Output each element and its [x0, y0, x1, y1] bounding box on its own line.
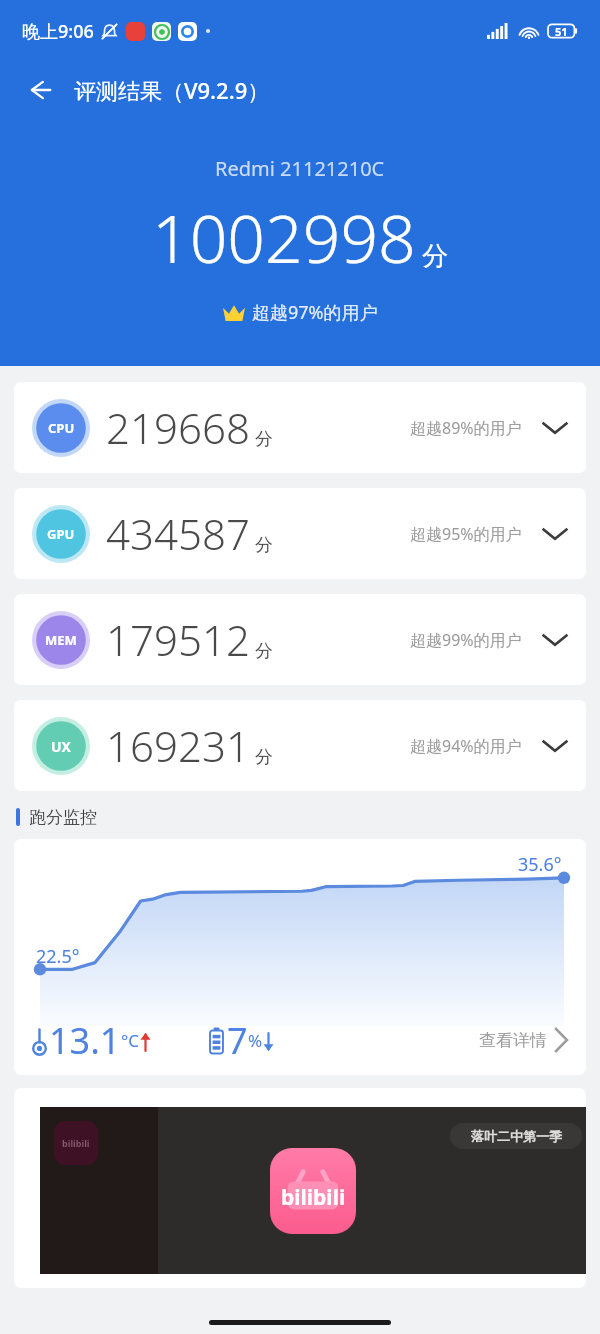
button[interactable]: 35.6°: [14, 839, 586, 1075]
staticText: %: [248, 1029, 263, 1052]
staticText: 179512: [106, 611, 250, 668]
staticText: UX: [51, 737, 71, 756]
staticText: 查看详情: [479, 1030, 547, 1051]
staticText: 分: [255, 534, 273, 557]
button[interactable]: MEM: [14, 594, 586, 685]
button[interactable]: Back: [18, 68, 62, 112]
staticText: 晚上9:06: [22, 19, 94, 44]
button[interactable]: UX: [14, 700, 586, 791]
staticText: bilibili: [281, 1183, 346, 1212]
staticText: °C: [121, 1029, 140, 1052]
staticText: 超越94%的用户: [410, 735, 522, 757]
staticText: 超越95%的用户: [410, 523, 522, 545]
staticText: 434587: [106, 505, 250, 562]
staticText: 13.1: [49, 1016, 121, 1065]
staticText: GPU: [47, 525, 75, 543]
staticText: Redmi 21121210C: [215, 155, 385, 182]
staticText: 22.5°: [36, 944, 80, 969]
staticText: 超越89%的用户: [410, 417, 522, 439]
staticText: 219668: [106, 399, 250, 456]
button[interactable]: 查看详情: [479, 1025, 570, 1055]
button[interactable]: bilibili: [14, 1088, 586, 1288]
staticText: 分: [255, 428, 273, 451]
button[interactable]: GPU: [14, 488, 586, 579]
staticText: 评测结果（V9.2.9）: [74, 75, 270, 105]
staticText: 落叶二中第一季: [471, 1128, 562, 1144]
staticText: 35.6°: [518, 852, 562, 877]
button[interactable]: CPU: [14, 382, 586, 473]
staticText: 1002998: [152, 192, 416, 282]
staticText: MEM: [45, 631, 77, 649]
staticText: CPU: [48, 419, 75, 437]
staticText: 分: [422, 240, 448, 273]
staticText: 跑分监控: [29, 807, 97, 828]
staticText: 169231: [106, 717, 250, 774]
staticText: 超越97%的用户: [252, 300, 378, 325]
staticText: 7: [227, 1016, 248, 1065]
staticText: 超越99%的用户: [410, 629, 522, 651]
staticText: 分: [255, 640, 273, 663]
staticText: 51: [555, 24, 568, 39]
staticText: 分: [255, 746, 273, 769]
staticText: bilibili: [62, 1137, 90, 1149]
